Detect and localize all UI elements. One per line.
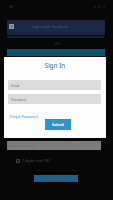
button[interactable]: Password [8, 94, 101, 104]
staticText: Password [11, 97, 26, 101]
staticText: I Agree with T&C [23, 158, 52, 163]
button[interactable]: Submit [45, 119, 71, 130]
staticText: Submit [52, 122, 64, 127]
button[interactable]: f [7, 20, 105, 32]
staticText: Log in with Facebook [32, 24, 68, 29]
button[interactable]: Forgot Password [10, 114, 38, 119]
staticText: Email [11, 83, 20, 87]
button[interactable]: I Agree with T&C [16, 158, 49, 163]
staticText: Sign In [4, 61, 106, 69]
staticText: f [11, 24, 13, 29]
button[interactable]: Email [8, 80, 101, 90]
staticText: OR [54, 41, 60, 46]
